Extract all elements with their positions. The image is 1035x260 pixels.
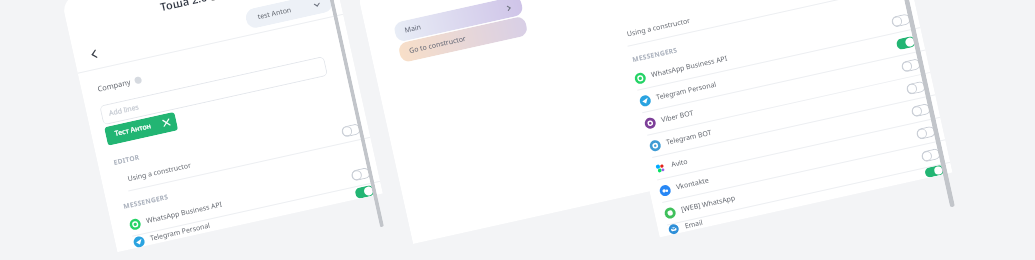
staticText: Avito [670, 157, 689, 170]
button[interactable]: Viber BOT [633, 50, 930, 137]
button[interactable]: Toggle off [350, 167, 371, 182]
button[interactable]: Toggle on [354, 184, 375, 199]
staticText: Telegram Personal [149, 221, 212, 244]
staticText: Telegram BOT [665, 128, 713, 147]
button[interactable]: Email [657, 163, 953, 237]
button[interactable]: Toggle off [890, 13, 911, 28]
button[interactable]: Go to constructor [397, 15, 529, 63]
staticText: Using a constructor [626, 16, 692, 39]
button[interactable]: Toggle on [895, 36, 916, 50]
staticText: EDITOR [113, 152, 141, 167]
staticText: Тест Антон [114, 121, 153, 139]
button[interactable]: Back [82, 42, 106, 66]
staticText: Email [684, 218, 704, 232]
button[interactable]: Telegram BOT [638, 73, 935, 159]
button[interactable]: Telegram Personal [115, 182, 383, 252]
button[interactable]: WhatsApp Business API [110, 159, 380, 240]
button[interactable]: [WEB] WhatsApp [653, 140, 950, 227]
button[interactable]: WhatsApp Business API [623, 5, 920, 92]
button[interactable]: Toggle off [905, 80, 926, 95]
staticText: Add lines [108, 102, 140, 119]
button[interactable]: Add lines [99, 56, 328, 125]
staticText: Using a constructor [127, 160, 192, 184]
button[interactable]: Avito [643, 95, 940, 182]
staticText: WhatsApp Business API [650, 54, 729, 80]
button[interactable]: Toggle on [924, 164, 945, 178]
staticText: Main [404, 22, 422, 36]
staticText: MESSENGERS [632, 45, 678, 64]
button[interactable]: Тест Антон [104, 112, 178, 146]
button[interactable]: Toggle off [920, 148, 941, 163]
button[interactable]: Main [393, 0, 524, 43]
staticText: Тоша 2.0 [159, 0, 209, 14]
staticText: Viber BOT [660, 108, 695, 125]
staticText: WhatsApp Business API [145, 200, 224, 226]
button[interactable]: Using a constructor [100, 115, 370, 196]
button[interactable]: Toggle off [915, 125, 936, 140]
staticText: [WEB] WhatsApp [680, 193, 737, 215]
staticText: Telegram Personal [655, 79, 718, 103]
button[interactable]: Vkontakte [648, 118, 945, 204]
staticText: MESSENGERS [123, 192, 169, 211]
staticText: Go to constructor [408, 34, 467, 56]
button[interactable]: test Anton [244, 0, 334, 30]
button[interactable]: Using a constructor [613, 0, 911, 48]
button[interactable]: Toggle off [340, 123, 361, 138]
staticText: Company [96, 76, 132, 94]
staticText: test Anton [257, 5, 293, 22]
staticText: Vkontakte [675, 175, 711, 192]
button[interactable]: Toggle off [910, 103, 931, 118]
button[interactable]: Toggle off [900, 58, 921, 73]
button[interactable]: Telegram Personal [628, 28, 925, 114]
